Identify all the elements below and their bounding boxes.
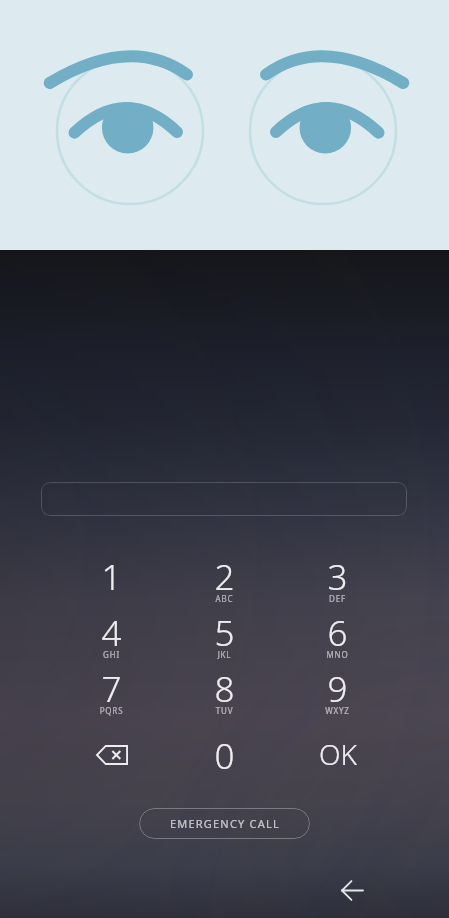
staticText: 8 xyxy=(168,665,281,713)
staticText: TUV xyxy=(168,705,281,716)
staticText: DEF xyxy=(281,593,394,604)
staticText: WXYZ xyxy=(281,705,394,716)
button[interactable]: Delete xyxy=(55,727,168,783)
button[interactable]: 1 xyxy=(55,548,168,604)
staticText: PQRS xyxy=(55,705,168,716)
staticText: 2 xyxy=(168,553,281,601)
staticText: MNO xyxy=(281,649,394,660)
staticText: 7 xyxy=(55,665,168,713)
button[interactable]: 9 xyxy=(281,660,394,716)
button[interactable]: 7 xyxy=(55,660,168,716)
staticText: 6 xyxy=(281,609,394,657)
button[interactable]: 2 xyxy=(168,548,281,604)
staticText: 4 xyxy=(55,609,168,657)
staticText: ABC xyxy=(168,593,281,604)
staticText: JKL xyxy=(168,649,281,660)
staticText: OK xyxy=(319,735,357,773)
button[interactable] xyxy=(41,482,407,516)
button[interactable]: 0 xyxy=(168,727,281,783)
staticText: 9 xyxy=(281,665,394,713)
button[interactable]: 8 xyxy=(168,660,281,716)
staticText: EMERGENCY CALL xyxy=(170,816,280,831)
button[interactable]: 3 xyxy=(281,548,394,604)
button[interactable]: 4 xyxy=(55,604,168,660)
staticText: 0 xyxy=(168,732,281,780)
staticText: 3 xyxy=(281,553,394,601)
staticText: GHI xyxy=(55,649,168,660)
staticText: 1 xyxy=(55,553,168,601)
staticText: 5 xyxy=(168,609,281,657)
button[interactable]: EMERGENCY CALL xyxy=(139,808,310,839)
button[interactable]: 5 xyxy=(168,604,281,660)
button[interactable]: OK xyxy=(281,727,394,783)
button[interactable]: 6 xyxy=(281,604,394,660)
button[interactable]: Back xyxy=(326,864,378,916)
